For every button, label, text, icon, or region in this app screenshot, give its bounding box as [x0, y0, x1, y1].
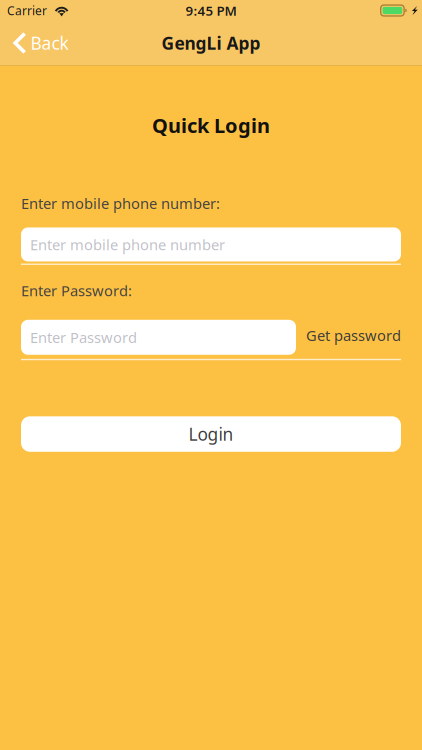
staticText: Carrier [7, 2, 47, 18]
staticText: Enter mobile phone number: [21, 194, 220, 213]
button[interactable]: Login [21, 416, 401, 452]
staticText: Back [31, 31, 69, 54]
staticText: Login [188, 423, 233, 446]
staticText: Enter Password: [21, 281, 132, 300]
staticText: Quick Login [152, 112, 270, 139]
staticText: GengLi App [161, 31, 260, 54]
staticText: Enter Password [30, 328, 137, 347]
button[interactable]: Get password [306, 326, 401, 349]
button[interactable]: Back [0, 21, 79, 65]
staticText: Enter mobile phone number [30, 235, 225, 254]
staticText: Get password [306, 326, 401, 345]
staticText: 9:45 PM [185, 2, 236, 19]
